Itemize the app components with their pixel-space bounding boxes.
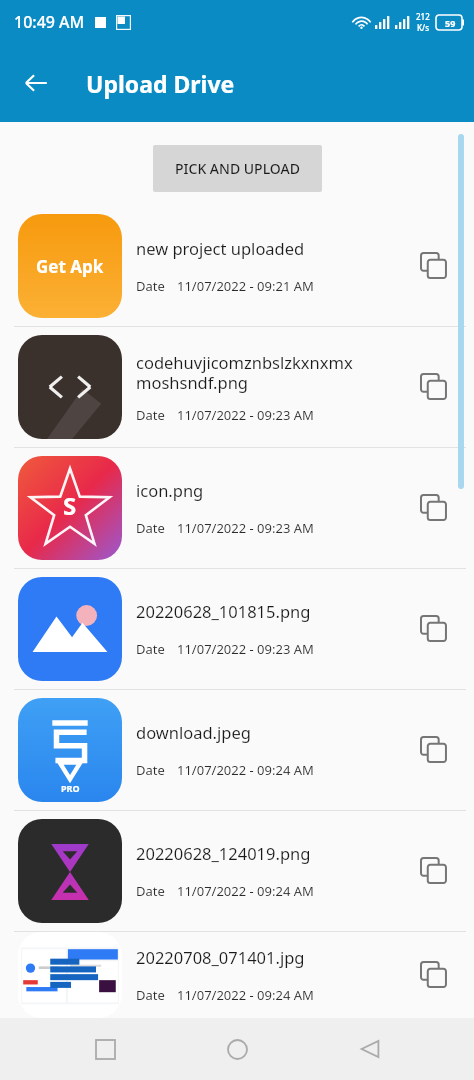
staticText: Date — [136, 761, 165, 779]
staticText: icon.png — [136, 479, 204, 501]
button[interactable]: Copy link — [406, 722, 462, 778]
button[interactable]: S — [0, 448, 474, 568]
staticText: Date — [136, 277, 165, 295]
staticText: codehuvjicomznbslzkxnxmx moshsndf.png — [136, 351, 406, 394]
button[interactable]: Copy link — [406, 843, 462, 899]
staticText: Date — [136, 519, 165, 537]
staticText: 11/07/2022 - 09:21 AM — [177, 277, 314, 295]
button[interactable]: Recents — [77, 1021, 133, 1077]
button[interactable]: 20220628_124019.png — [0, 811, 474, 931]
staticText: download.jpeg — [136, 721, 251, 743]
button[interactable]: Get Apk — [0, 206, 474, 326]
staticText: 11/07/2022 - 09:24 AM — [177, 986, 314, 1004]
staticText: Date — [136, 406, 165, 424]
staticText: 20220628_101815.png — [136, 600, 311, 622]
staticText: Date — [136, 640, 165, 658]
button[interactable]: Back — [342, 1021, 398, 1077]
button[interactable]: Copy link — [406, 359, 462, 415]
staticText: 59 — [445, 17, 456, 29]
staticText: Date — [136, 986, 165, 1004]
staticText: new project uploaded — [136, 237, 305, 259]
button[interactable]: 20220628_101815.png — [0, 569, 474, 689]
staticText: 20220708_071401.jpg — [136, 946, 305, 968]
button[interactable]: PICK AND UPLOAD — [153, 145, 322, 192]
staticText: Get Apk — [36, 255, 104, 278]
staticText: S — [63, 489, 77, 522]
button[interactable]: Copy link — [406, 601, 462, 657]
staticText: Date — [136, 882, 165, 900]
button[interactable]: 20220708_071401.jpg — [0, 932, 474, 1018]
staticText: 20220628_124019.png — [136, 842, 311, 864]
button[interactable]: Back — [12, 59, 60, 107]
staticText: PICK AND UPLOAD — [175, 159, 300, 178]
button[interactable]: Home — [209, 1021, 265, 1077]
staticText: K/s — [417, 22, 430, 33]
staticText: Upload Drive — [86, 68, 235, 99]
staticText: 212 — [416, 11, 430, 22]
staticText: 10:49 AM — [14, 11, 85, 33]
button[interactable]: Copy link — [406, 238, 462, 294]
staticText: 11/07/2022 - 09:24 AM — [177, 761, 314, 779]
button[interactable]: PRO — [0, 690, 474, 810]
button[interactable]: Copy link — [406, 480, 462, 536]
button[interactable]: codehuvjicomznbslzkxnxmx moshsndf.png — [0, 327, 474, 447]
staticText: 11/07/2022 - 09:24 AM — [177, 882, 314, 900]
button[interactable]: Copy link — [406, 947, 462, 1003]
staticText: 11/07/2022 - 09:23 AM — [177, 640, 314, 658]
staticText: PRO — [61, 782, 80, 794]
staticText: 11/07/2022 - 09:23 AM — [177, 519, 314, 537]
staticText: 11/07/2022 - 09:23 AM — [177, 406, 314, 424]
